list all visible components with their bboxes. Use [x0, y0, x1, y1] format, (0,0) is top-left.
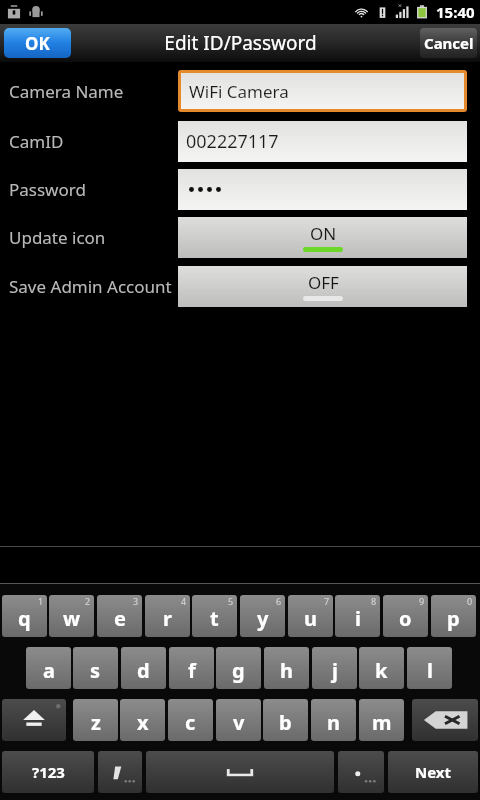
button[interactable]: Delete: [412, 699, 478, 741]
staticText: 5: [228, 595, 234, 607]
staticText: y: [257, 605, 269, 632]
button[interactable]: n: [311, 699, 356, 741]
staticText: f: [188, 657, 196, 684]
button[interactable]: 8: [335, 595, 380, 637]
staticText: k: [375, 657, 388, 684]
staticText: CamID: [9, 130, 64, 153]
staticText: x: [137, 709, 149, 736]
button[interactable]: ON: [178, 217, 467, 258]
staticText: Next: [415, 762, 452, 782]
button[interactable]: v: [216, 699, 261, 741]
button[interactable]: Space: [146, 751, 334, 793]
staticText: b: [279, 709, 292, 736]
staticText: 8: [371, 595, 377, 607]
button[interactable]: z: [73, 699, 118, 741]
button[interactable]: x: [120, 699, 165, 741]
staticText: 15:40: [436, 2, 475, 22]
staticText: s: [90, 657, 101, 684]
staticText: e: [114, 605, 126, 632]
staticText: l: [427, 657, 433, 684]
button[interactable]: 3: [97, 595, 142, 637]
button[interactable]: h: [264, 647, 309, 689]
staticText: n: [327, 709, 340, 736]
staticText: 2: [85, 595, 91, 607]
button[interactable]: [178, 169, 467, 210]
button[interactable]: l: [407, 647, 452, 689]
button[interactable]: 5: [192, 595, 237, 637]
staticText: j: [332, 657, 338, 684]
button[interactable]: 7: [288, 595, 333, 637]
staticText: 002227117: [186, 129, 279, 154]
button[interactable]: OFF: [178, 266, 467, 307]
staticText: OK: [25, 32, 50, 55]
button[interactable]: c: [168, 699, 213, 741]
button[interactable]: 6: [240, 595, 285, 637]
staticText: o: [399, 605, 412, 632]
staticText: 9: [419, 595, 425, 607]
staticText: ON: [310, 222, 337, 245]
button[interactable]: g: [216, 647, 261, 689]
button[interactable]: Period: [338, 751, 384, 793]
button[interactable]: Comma: [98, 751, 142, 793]
staticText: 1: [38, 595, 44, 607]
staticText: WiFi Camera: [189, 80, 289, 103]
staticText: Save Admin Account: [9, 275, 172, 298]
button[interactable]: a: [26, 647, 71, 689]
staticText: z: [91, 709, 101, 736]
button[interactable]: Shift: [2, 699, 66, 741]
staticText: g: [232, 657, 245, 684]
staticText: q: [18, 605, 31, 632]
button[interactable]: OK: [4, 28, 71, 58]
button[interactable]: 9: [383, 595, 428, 637]
staticText: Update icon: [9, 226, 106, 249]
button[interactable]: f: [169, 647, 214, 689]
staticText: 7: [324, 595, 330, 607]
button[interactable]: m: [359, 699, 404, 741]
button[interactable]: 4: [145, 595, 190, 637]
button[interactable]: k: [359, 647, 404, 689]
staticText: h: [280, 657, 293, 684]
button[interactable]: 2: [49, 595, 94, 637]
staticText: Password: [9, 178, 86, 201]
button[interactable]: Cancel: [420, 28, 477, 58]
staticText: OFF: [308, 271, 339, 294]
staticText: u: [304, 605, 317, 632]
button[interactable]: b: [263, 699, 308, 741]
button[interactable]: 0: [431, 595, 476, 637]
staticText: v: [233, 709, 245, 736]
button[interactable]: 002227117: [178, 121, 467, 162]
staticText: a: [43, 657, 55, 684]
staticText: r: [163, 605, 172, 632]
staticText: Edit ID/Password: [164, 30, 317, 56]
button[interactable]: WiFi Camera: [181, 73, 464, 109]
button[interactable]: ?123: [2, 751, 94, 793]
staticText: d: [137, 657, 150, 684]
button[interactable]: j: [312, 647, 357, 689]
staticText: 6: [276, 595, 282, 607]
staticText: Camera Name: [9, 80, 124, 103]
staticText: c: [185, 709, 196, 736]
button[interactable]: Next: [388, 751, 478, 793]
button[interactable]: 1: [2, 595, 47, 637]
staticText: Cancel: [424, 33, 474, 53]
button[interactable]: s: [73, 647, 118, 689]
staticText: i: [355, 605, 361, 632]
staticText: 0: [467, 595, 473, 607]
staticText: m: [372, 709, 392, 736]
staticText: p: [447, 605, 460, 632]
button[interactable]: d: [121, 647, 166, 689]
staticText: 3: [133, 595, 139, 607]
staticText: ?123: [32, 762, 65, 782]
staticText: 4: [181, 595, 187, 607]
staticText: t: [210, 605, 219, 632]
staticText: w: [63, 605, 81, 632]
